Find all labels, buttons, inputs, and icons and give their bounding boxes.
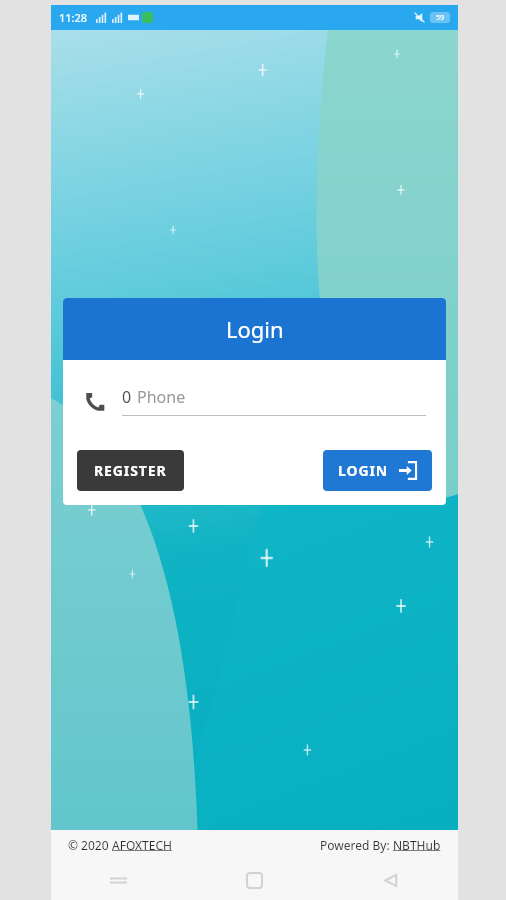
staticText: Login	[226, 314, 284, 344]
staticText: NBTHub	[393, 837, 441, 853]
button[interactable]: LOGIN	[323, 450, 432, 491]
staticText: Phone	[137, 386, 186, 408]
button[interactable]: Back	[322, 860, 458, 900]
staticText: REGISTER	[94, 461, 167, 480]
button[interactable]: Recent apps	[51, 860, 186, 900]
other: Login	[398, 461, 417, 480]
staticText: LOGIN	[338, 461, 389, 480]
button[interactable]: REGISTER	[77, 450, 184, 491]
staticText: 59	[436, 13, 445, 23]
button[interactable]: NBTHub	[393, 837, 441, 853]
staticText: 11:28	[59, 10, 88, 25]
button[interactable]: Home	[186, 860, 322, 900]
staticText: Powered By:	[320, 837, 393, 853]
staticText: 0	[122, 386, 132, 408]
staticText: © 2020	[68, 837, 112, 853]
staticText: AFOXTECH	[112, 837, 172, 853]
button[interactable]: AFOXTECH	[112, 837, 172, 853]
